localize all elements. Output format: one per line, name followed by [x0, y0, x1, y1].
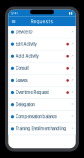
- staticText: >: [71, 127, 73, 131]
- staticText: >: [71, 30, 73, 34]
- staticText: Requests: [30, 19, 53, 24]
- staticText: ≡: [11, 18, 16, 25]
- button[interactable]: Device ID: [8, 26, 76, 38]
- staticText: Training Enrollment handling: [16, 126, 67, 131]
- staticText: Device ID: [16, 29, 33, 34]
- staticText: >: [71, 114, 73, 119]
- staticText: Consult: [16, 66, 29, 71]
- staticText: >: [71, 102, 73, 107]
- button[interactable]: Leaves: [8, 75, 76, 87]
- staticText: >: [71, 42, 73, 46]
- staticText: Compensation balance: [16, 114, 57, 119]
- button[interactable]: Menu: [11, 17, 17, 26]
- staticText: Leaves: [16, 78, 28, 83]
- staticText: >: [71, 66, 73, 71]
- staticText: Delegation: [16, 102, 35, 107]
- button[interactable]: Consult: [8, 62, 76, 75]
- staticText: Edit Activity: [16, 42, 37, 47]
- staticText: >: [71, 90, 73, 95]
- staticText: ▮▮: [69, 11, 73, 15]
- button[interactable]: Training Enrollment handling: [8, 123, 76, 135]
- button[interactable]: Overtime Request: [8, 87, 76, 99]
- staticText: Add Activity: [16, 54, 39, 59]
- button[interactable]: Edit Activity: [8, 38, 76, 50]
- button[interactable]: Add Activity: [8, 50, 76, 63]
- staticText: Overtime Request: [16, 90, 49, 95]
- staticText: >: [71, 54, 73, 58]
- button[interactable]: Compensation balance: [8, 111, 76, 123]
- button[interactable]: Delegation: [8, 99, 76, 111]
- staticText: 9:41: [11, 11, 17, 15]
- staticText: >: [71, 78, 73, 83]
